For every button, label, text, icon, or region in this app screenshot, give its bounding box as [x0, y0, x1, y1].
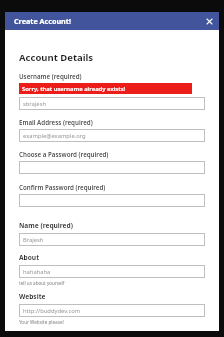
- staticText: About: [19, 253, 39, 262]
- button[interactable]: [19, 161, 205, 174]
- button[interactable]: sbrajesh: [19, 97, 205, 110]
- button[interactable]: hahahaha: [19, 265, 205, 278]
- button[interactable]: [19, 194, 205, 207]
- staticText: hahahaha: [23, 268, 51, 276]
- staticText: sbrajesh: [23, 100, 46, 108]
- staticText: Name (required): [19, 221, 73, 230]
- button[interactable]: example@example.org: [19, 129, 205, 142]
- staticText: Sorry, that username already exists!: [22, 85, 126, 93]
- button[interactable]: Close: [203, 15, 215, 27]
- staticText: Brajesh: [23, 236, 44, 244]
- button[interactable]: Brajesh: [19, 233, 205, 246]
- staticText: tell us about yourself: [19, 280, 65, 286]
- staticText: Website: [19, 292, 46, 301]
- staticText: example@example.org: [23, 132, 86, 140]
- staticText: Your Website please!: [19, 319, 64, 325]
- staticText: Username (required): [19, 72, 82, 80]
- staticText: Account Details: [19, 51, 94, 64]
- staticText: Confirm Password (required): [19, 183, 106, 191]
- staticText: http://buddydev.com: [23, 307, 81, 315]
- button[interactable]: http://buddydev.com: [19, 304, 205, 317]
- staticText: Choose a Password (required): [19, 150, 109, 158]
- staticText: Email Address (required): [19, 118, 93, 126]
- staticText: Create Account!: [14, 16, 71, 26]
